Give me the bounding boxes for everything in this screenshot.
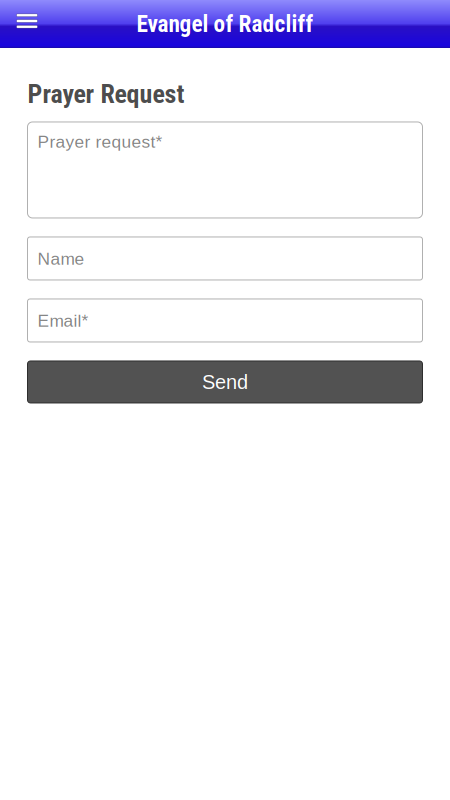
- staticText: Evangel of Radcliff: [136, 10, 313, 38]
- staticText: Prayer Request: [27, 79, 184, 109]
- button[interactable]: Prayer request*: [27, 122, 422, 218]
- staticText: Prayer request*: [37, 132, 162, 151]
- button[interactable]: Name: [27, 237, 422, 280]
- button[interactable]: Email*: [27, 299, 422, 342]
- button[interactable]: Open navigation menu: [0, 2, 44, 46]
- staticText: Send: [202, 371, 248, 393]
- staticText: Email*: [37, 311, 88, 330]
- button[interactable]: Send: [27, 361, 422, 403]
- staticText: Name: [37, 249, 84, 268]
